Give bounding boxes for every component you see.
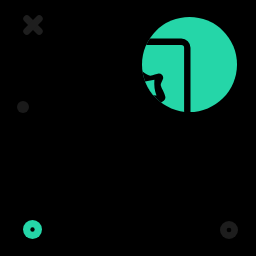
button[interactable]: Selected tab	[23, 220, 42, 239]
button[interactable]: Menu dot	[17, 101, 29, 113]
button[interactable]: Settings tab	[220, 221, 238, 239]
button[interactable]: Close	[19, 11, 47, 39]
button[interactable]: Exit	[142, 17, 237, 112]
